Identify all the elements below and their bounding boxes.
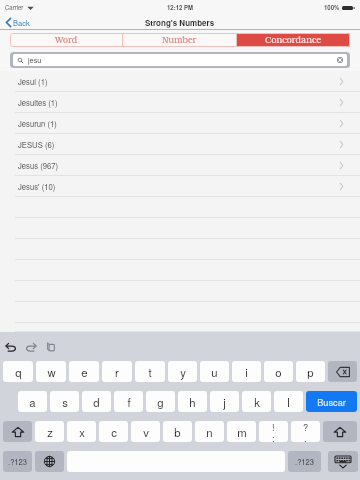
button[interactable]: g <box>146 391 175 412</box>
button[interactable]: Jesus' (10) <box>0 176 360 197</box>
button[interactable]: w <box>36 361 66 382</box>
button[interactable]: i <box>232 361 261 382</box>
staticText: b <box>174 424 181 440</box>
button[interactable]: e <box>69 361 99 382</box>
staticText: Word <box>55 34 78 46</box>
staticText: x <box>79 424 85 440</box>
staticText: ? <box>303 421 309 433</box>
button[interactable]: .?123 <box>288 451 321 472</box>
staticText: Buscar <box>317 395 346 408</box>
button[interactable]: ! <box>259 421 288 442</box>
button[interactable] <box>0 239 360 260</box>
button[interactable] <box>0 260 360 281</box>
button[interactable]: z <box>35 421 64 442</box>
staticText: l <box>287 394 290 410</box>
staticText: f <box>127 394 131 410</box>
button[interactable]: Buscar <box>306 391 357 412</box>
staticText: d <box>93 394 100 410</box>
button[interactable]: Paste <box>45 341 57 353</box>
button[interactable]: Undo <box>5 341 17 353</box>
button[interactable]: q <box>3 361 33 382</box>
button[interactable]: h <box>178 391 207 412</box>
button[interactable]: Shift <box>323 421 357 442</box>
button[interactable] <box>0 302 360 323</box>
staticText: c <box>111 424 117 440</box>
button[interactable]: Jesui (1) <box>0 71 360 92</box>
staticText: Jesus' (10) <box>18 181 56 192</box>
button[interactable]: m <box>227 421 256 442</box>
button[interactable]: b <box>163 421 192 442</box>
button[interactable]: j <box>210 391 239 412</box>
button[interactable] <box>0 323 360 332</box>
button[interactable]: Jesurun (1) <box>0 113 360 134</box>
staticText: t <box>148 364 152 380</box>
staticText: Strong's Numbers <box>145 17 215 28</box>
button[interactable]: c <box>99 421 128 442</box>
staticText: u <box>211 364 218 380</box>
staticText: Concordance <box>265 34 322 46</box>
button[interactable]: Jesus (967) <box>0 155 360 176</box>
staticText: Number <box>162 34 197 46</box>
staticText: e <box>81 364 88 380</box>
button[interactable]: t <box>135 361 165 382</box>
staticText: j <box>223 394 226 410</box>
button[interactable]: Hide keyboard <box>328 451 358 472</box>
button[interactable]: l <box>274 391 303 412</box>
staticText: Carrier <box>5 3 24 12</box>
button[interactable]: n <box>195 421 224 442</box>
button[interactable]: f <box>114 391 143 412</box>
button[interactable]: Concordance <box>237 33 350 47</box>
button[interactable]: Number <box>123 33 236 47</box>
staticText: Jesuites (1) <box>18 97 58 108</box>
button[interactable]: Redo <box>25 341 37 353</box>
button[interactable]: x <box>67 421 96 442</box>
button[interactable]: Clear text <box>337 57 343 63</box>
staticText: Back <box>13 17 30 28</box>
staticText: k <box>254 394 260 410</box>
button[interactable]: p <box>296 361 325 382</box>
staticText: v <box>143 424 149 440</box>
staticText: s <box>62 394 68 410</box>
button[interactable]: y <box>168 361 197 382</box>
button[interactable]: JESUS (6) <box>0 134 360 155</box>
button[interactable]: Jesuites (1) <box>0 92 360 113</box>
staticText: . <box>304 431 307 442</box>
button[interactable] <box>0 197 360 218</box>
staticText: .?123 <box>8 456 27 467</box>
staticText: n <box>206 424 213 440</box>
button[interactable]: s <box>50 391 79 412</box>
button[interactable]: d <box>82 391 111 412</box>
staticText: m <box>237 424 247 440</box>
staticText: w <box>47 364 56 380</box>
staticText: ! <box>272 421 275 433</box>
button[interactable]: r <box>102 361 132 382</box>
staticText: .?123 <box>295 456 314 467</box>
button[interactable]: a <box>18 391 47 412</box>
button[interactable]: v <box>131 421 160 442</box>
button[interactable]: ? <box>291 421 320 442</box>
button[interactable]: u <box>200 361 229 382</box>
button[interactable]: Shift <box>3 421 32 442</box>
staticText: q <box>15 364 22 380</box>
staticText: 12:12 PM <box>167 3 194 12</box>
button[interactable]: .?123 <box>3 451 32 472</box>
button[interactable]: k <box>242 391 271 412</box>
staticText: JESUS (6) <box>18 139 55 150</box>
button[interactable]: Word <box>10 33 122 47</box>
button[interactable]: Back <box>6 14 30 30</box>
button[interactable]: jesu <box>13 54 347 66</box>
button[interactable] <box>0 218 360 239</box>
staticText: z <box>47 424 53 440</box>
staticText: g <box>157 394 164 410</box>
staticText: 100% <box>324 3 340 12</box>
staticText: o <box>275 364 282 380</box>
button[interactable]: o <box>264 361 293 382</box>
staticText: h <box>189 394 196 410</box>
button[interactable]: Backspace <box>328 361 357 382</box>
staticText: Jesus (967) <box>18 160 59 171</box>
button[interactable]: Change language <box>35 451 64 472</box>
staticText: a <box>29 394 36 410</box>
staticText: ; <box>272 431 275 442</box>
button[interactable] <box>0 281 360 302</box>
